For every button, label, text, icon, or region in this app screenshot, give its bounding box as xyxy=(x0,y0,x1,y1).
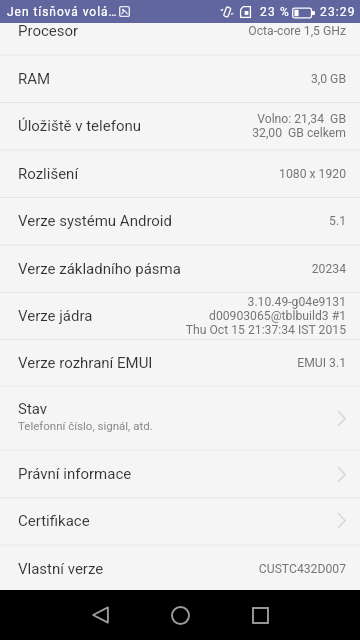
staticText: 3.10.49-g04e9131 xyxy=(247,295,346,309)
button[interactable]: Verze rozhraní EMUI xyxy=(0,339,360,386)
staticText: CUSTC432D007 xyxy=(258,562,346,576)
staticText: 1080 x 1920 xyxy=(279,167,346,181)
button[interactable]: Verze základního pásma xyxy=(0,245,360,293)
staticText: Telefonní číslo, signál, atd. xyxy=(18,419,153,432)
button[interactable]: Home xyxy=(152,590,208,640)
staticText: EMUI 3.1 xyxy=(297,356,346,370)
button[interactable]: RAM xyxy=(0,55,360,103)
staticText: 23:29 xyxy=(320,5,356,19)
button[interactable]: Právní informace xyxy=(0,450,360,498)
staticText: Verze systému Android xyxy=(18,212,172,230)
staticText: Rozlišení xyxy=(18,165,79,183)
button[interactable]: Procesor xyxy=(0,23,360,55)
staticText: Thu Oct 15 21:37:34 IST 2015 xyxy=(185,323,346,337)
button[interactable]: Verze systému Android xyxy=(0,197,360,245)
staticText: 20234 xyxy=(311,262,346,276)
staticText: RAM xyxy=(18,70,51,88)
button[interactable]: Back xyxy=(72,590,128,640)
button[interactable]: Certifikace xyxy=(0,497,360,544)
button[interactable]: Stav xyxy=(0,386,360,450)
staticText: Stav xyxy=(18,400,48,418)
staticText: Jen tísňová volá… xyxy=(7,5,118,19)
staticText: 32,00 GB celkem xyxy=(252,126,346,140)
button[interactable]: Verze jádra xyxy=(0,292,360,339)
staticText: d00903065@tblbuild3 #1 xyxy=(209,309,346,323)
button[interactable]: Vlastní verze xyxy=(0,545,360,590)
staticText: Certifikace xyxy=(18,512,90,530)
staticText: 23 % xyxy=(260,5,290,19)
staticText: Verze rozhraní EMUI xyxy=(18,354,153,372)
staticText: 5.1 xyxy=(329,214,346,228)
staticText: Procesor xyxy=(18,23,79,40)
staticText: Verze jádra xyxy=(18,307,93,325)
button[interactable]: Rozlišení xyxy=(0,150,360,198)
button[interactable]: Recents xyxy=(232,590,288,640)
staticText: Volno: 21,34 GB xyxy=(257,112,346,126)
staticText: Úložiště v telefonu xyxy=(18,117,141,135)
staticText: 3,0 GB xyxy=(310,72,346,86)
staticText: Právní informace xyxy=(18,465,132,483)
button[interactable]: Úložiště v telefonu xyxy=(0,102,360,150)
staticText: Vlastní verze xyxy=(18,560,104,578)
staticText: Octa-core 1,5 GHz xyxy=(248,24,346,38)
staticText: Verze základního pásma xyxy=(18,260,181,278)
